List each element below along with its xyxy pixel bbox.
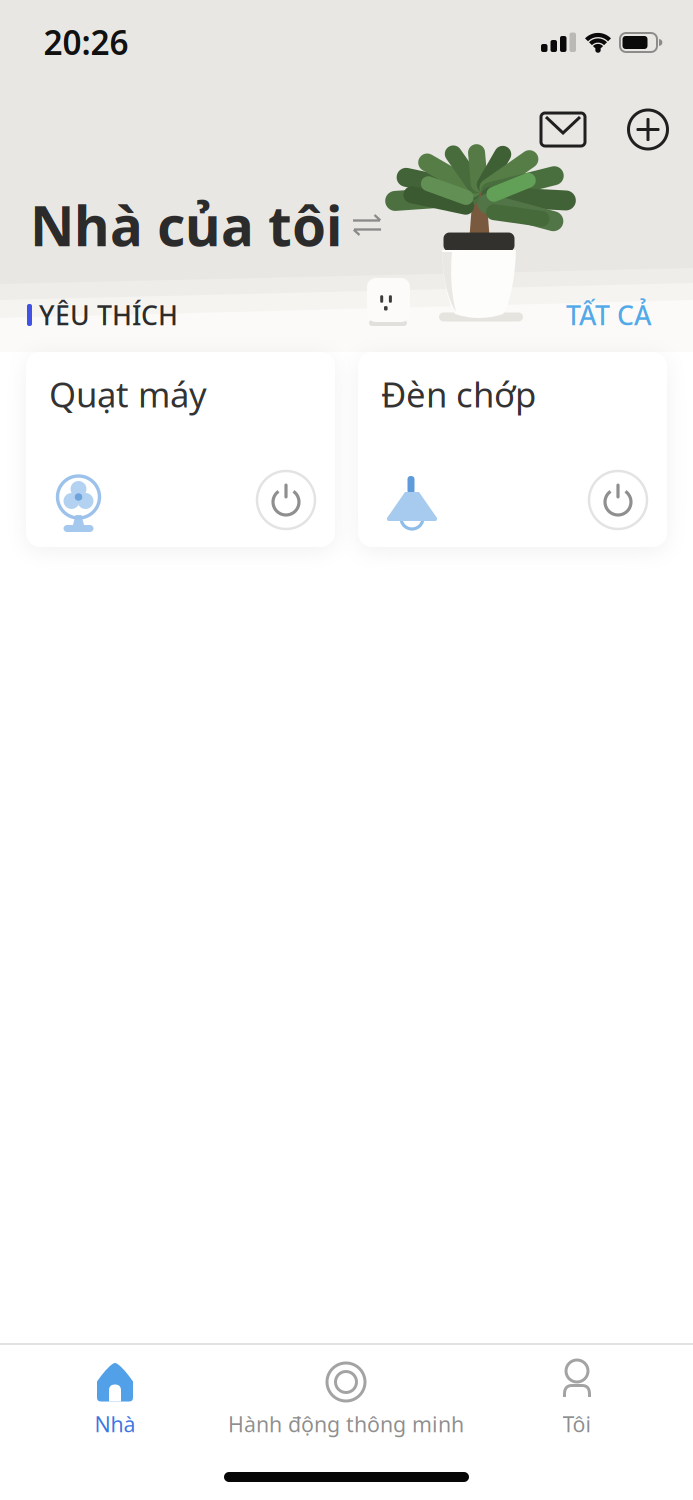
staticText: TẤT CẢ (566, 297, 651, 333)
button[interactable]: Hành động thông minh (231, 1344, 461, 1444)
button[interactable]: Power (257, 471, 315, 529)
button[interactable]: Power (589, 471, 647, 529)
staticText: Nhà của tôi (30, 189, 342, 261)
staticText: Quạt máy (49, 371, 207, 417)
staticText: 20:26 (43, 20, 128, 64)
button[interactable]: Nhà của tôi, chuyển nhà (30, 189, 381, 261)
button[interactable]: TẤT CẢ (566, 297, 651, 333)
button[interactable]: Nhà (57, 1344, 173, 1444)
staticText: Nhà (94, 1410, 135, 1438)
button[interactable]: Messages (541, 113, 585, 146)
button[interactable]: Quạt máy (26, 352, 335, 547)
staticText: Tôi (562, 1410, 591, 1438)
staticText: Hành động thông minh (228, 1410, 464, 1438)
staticText: YÊU THÍCH (39, 297, 178, 333)
button[interactable]: Đèn chớp (358, 352, 667, 547)
staticText: Đèn chớp (381, 371, 536, 417)
button[interactable]: Tôi (519, 1344, 635, 1444)
button[interactable]: Add device (628, 110, 667, 149)
